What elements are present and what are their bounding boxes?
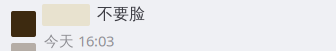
staticText: 今天 16:03 <box>44 31 114 50</box>
staticText: 不要脸 <box>97 4 145 24</box>
